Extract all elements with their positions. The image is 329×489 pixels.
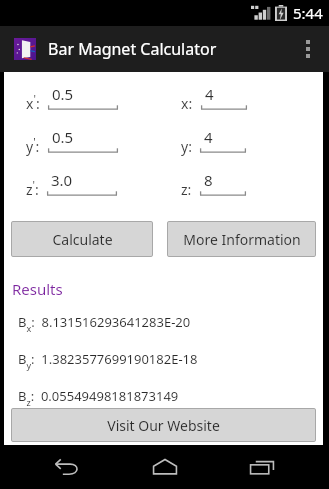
staticText: Bx: 8.131516293641283E-20 <box>18 313 191 334</box>
button[interactable]: 0.5 <box>48 127 118 156</box>
button[interactable]: 4 <box>200 127 246 156</box>
staticText: 0.5 <box>52 127 74 147</box>
staticText: y: <box>181 137 192 156</box>
staticText: Visit Our Website <box>107 416 220 435</box>
staticText: y': <box>26 134 40 156</box>
staticText: 3.0 <box>51 170 73 190</box>
staticText: 4 <box>204 127 213 147</box>
staticText: 0.5 <box>52 84 74 104</box>
staticText: Calculate <box>52 230 113 249</box>
staticText: 5:44 <box>293 3 323 23</box>
button[interactable]: 0.5 <box>48 84 118 113</box>
button[interactable]: Visit Our Website <box>11 408 316 442</box>
staticText: z': <box>26 177 39 199</box>
staticText: 8 <box>204 170 213 190</box>
button[interactable]: 3.0 <box>47 170 117 199</box>
staticText: z: <box>181 180 192 199</box>
button[interactable]: Back <box>37 445 97 489</box>
staticText: Bar Magnet Calculator <box>48 38 217 60</box>
staticText: Bz: 0.05549498181873149 <box>18 387 179 408</box>
button[interactable]: Calculate <box>11 221 153 257</box>
button[interactable]: 4 <box>201 84 247 113</box>
staticText: More Information <box>183 230 301 249</box>
button[interactable]: 8 <box>200 170 246 199</box>
staticText: 4 <box>205 84 214 104</box>
button[interactable]: Recent apps <box>232 445 292 489</box>
button[interactable]: More Information <box>167 221 316 257</box>
button[interactable]: Home <box>135 445 195 489</box>
staticText: Results <box>12 279 63 299</box>
staticText: By: 1.3823577699190182E-18 <box>18 350 198 371</box>
staticText: x: <box>181 94 193 113</box>
button[interactable]: More options <box>291 26 325 72</box>
staticText: x': <box>26 91 40 113</box>
